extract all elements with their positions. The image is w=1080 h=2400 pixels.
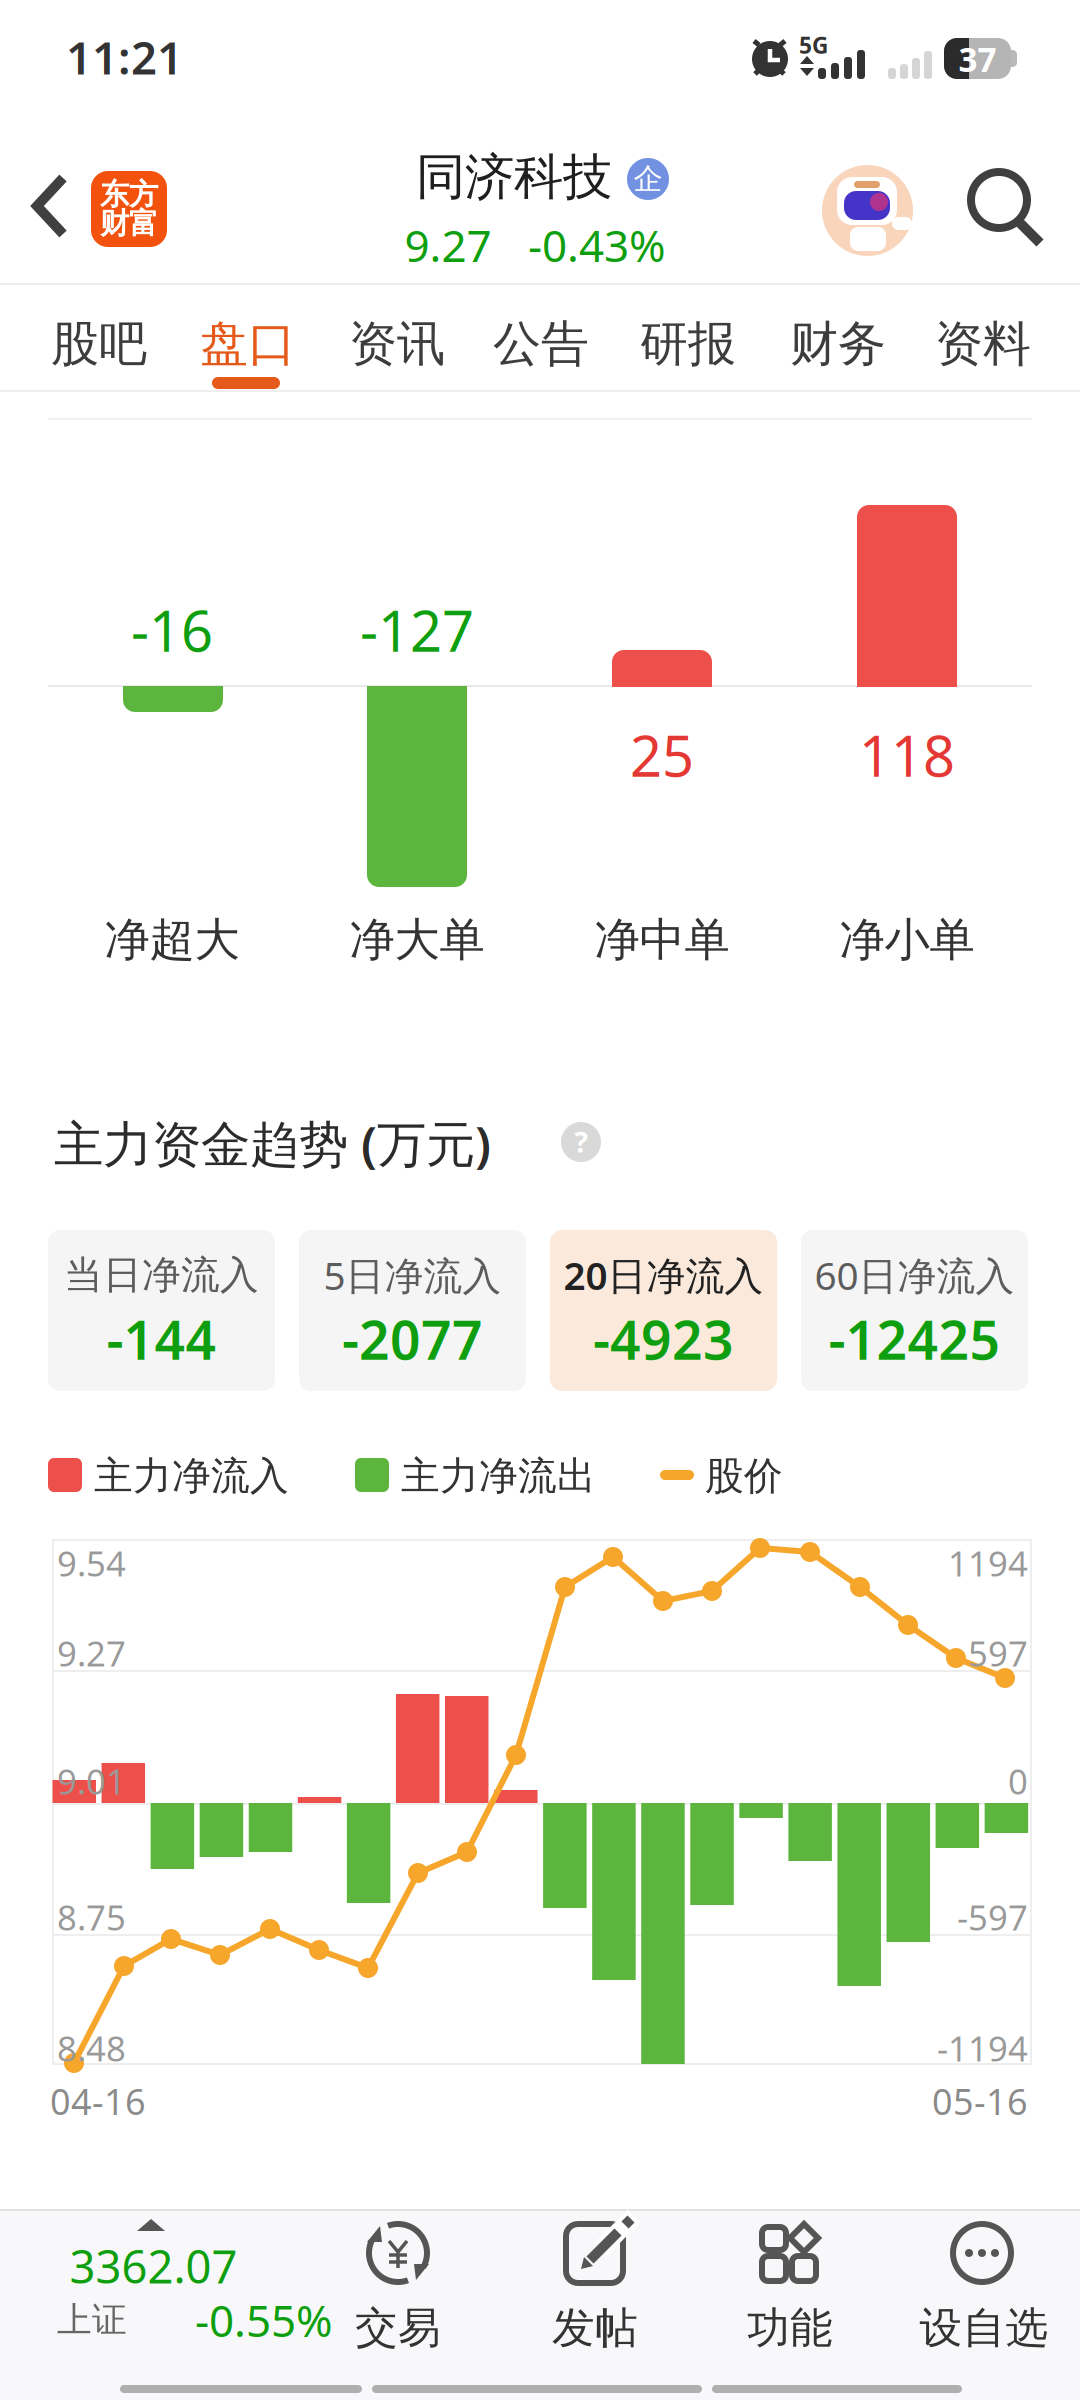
button[interactable]: Assistant bbox=[0, 0, 1080, 2400]
staticText: 5日净流入 bbox=[323, 1249, 501, 1301]
staticText: 9.54 bbox=[57, 1540, 126, 1586]
button[interactable]: Search bbox=[0, 0, 1080, 2400]
staticText: -16 bbox=[131, 593, 213, 667]
staticText: 净中单 bbox=[594, 912, 729, 968]
staticText: 主力资金趋势 (万元) bbox=[54, 1110, 491, 1176]
staticText: -12425 bbox=[828, 1304, 1000, 1374]
staticText: -597 bbox=[957, 1894, 1028, 1940]
staticText: 3362.07 bbox=[69, 2236, 237, 2296]
staticText: 净大单 bbox=[349, 912, 484, 968]
button[interactable]: 研报 bbox=[0, 0, 1080, 2400]
button[interactable]: 公告 bbox=[0, 0, 1080, 2400]
staticText: 东方 bbox=[100, 176, 158, 212]
button[interactable]: 当日净流入 bbox=[0, 0, 1080, 2400]
button[interactable]: 财务 bbox=[0, 0, 1080, 2400]
staticText: 20日净流入 bbox=[563, 1249, 763, 1301]
staticText: 37 bbox=[958, 37, 996, 81]
staticText: 60日净流入 bbox=[814, 1249, 1014, 1301]
staticText: 上证 bbox=[57, 2299, 127, 2341]
staticText: 8.75 bbox=[57, 1894, 126, 1940]
staticText: -144 bbox=[106, 1304, 216, 1374]
staticText: 11:21 bbox=[66, 27, 183, 87]
button[interactable]: 3362.07 bbox=[0, 0, 1080, 2400]
staticText: 股吧 bbox=[51, 314, 147, 373]
button[interactable]: Back bbox=[0, 0, 1080, 2400]
staticText: 净超大 bbox=[104, 912, 239, 968]
button[interactable]: 设自选 bbox=[0, 0, 1080, 2400]
button[interactable]: Help bbox=[0, 0, 1080, 2400]
button[interactable]: 资料 bbox=[0, 0, 1080, 2400]
staticText: -127 bbox=[360, 593, 474, 667]
staticText: 净小单 bbox=[839, 912, 974, 968]
button[interactable]: 60日净流入 bbox=[0, 0, 1080, 2400]
staticText: 财富 bbox=[100, 205, 158, 241]
staticText: -0.43% bbox=[528, 216, 666, 274]
staticText: 公告 bbox=[493, 314, 589, 373]
staticText: -0.55% bbox=[195, 2291, 333, 2349]
staticText: 资料 bbox=[935, 314, 1031, 373]
staticText: 研报 bbox=[640, 314, 736, 373]
staticText: 9.27 bbox=[57, 1630, 126, 1676]
button[interactable]: 资讯 bbox=[0, 0, 1080, 2400]
staticText: 股价 bbox=[705, 1452, 783, 1500]
staticText: 资讯 bbox=[349, 314, 445, 373]
staticText: -1194 bbox=[937, 2025, 1028, 2071]
button[interactable]: 发帖 bbox=[0, 0, 1080, 2400]
button[interactable]: 功能 bbox=[0, 0, 1080, 2400]
staticText: 主力净流出 bbox=[401, 1452, 596, 1500]
staticText: 盘口 bbox=[200, 314, 296, 373]
staticText: 9.27 bbox=[404, 216, 491, 274]
staticText: 5G bbox=[799, 30, 828, 60]
staticText: 25 bbox=[630, 718, 694, 792]
button[interactable]: 盘口 bbox=[0, 0, 1080, 2400]
staticText: 主力净流入 bbox=[94, 1452, 289, 1500]
button[interactable]: 交易 bbox=[0, 0, 1080, 2400]
staticText: 功能 bbox=[747, 2302, 833, 2354]
staticText: 交易 bbox=[355, 2302, 441, 2354]
button[interactable]: 股吧 bbox=[0, 0, 1080, 2400]
staticText: 0 bbox=[1008, 1758, 1028, 1804]
staticText: 发帖 bbox=[552, 2302, 638, 2354]
staticText: -4923 bbox=[593, 1304, 734, 1374]
staticText: ? bbox=[574, 1123, 587, 1161]
staticText: 当日净流入 bbox=[64, 1251, 259, 1299]
staticText: -2077 bbox=[342, 1304, 483, 1374]
staticText: 财务 bbox=[790, 314, 886, 373]
staticText: 118 bbox=[859, 718, 955, 792]
button[interactable]: 5日净流入 bbox=[0, 0, 1080, 2400]
staticText: 05-16 bbox=[932, 2077, 1028, 2125]
staticText: 设自选 bbox=[919, 2302, 1048, 2354]
staticText: 8.48 bbox=[57, 2025, 126, 2071]
staticText: 同济科技 bbox=[416, 147, 612, 207]
staticText: 企 bbox=[633, 161, 662, 197]
button[interactable]: 20日净流入 bbox=[0, 0, 1080, 2400]
staticText: 1194 bbox=[948, 1540, 1028, 1586]
staticText: 597 bbox=[968, 1630, 1028, 1676]
staticText: 04-16 bbox=[50, 2077, 146, 2125]
staticText: 9.01 bbox=[57, 1758, 126, 1804]
